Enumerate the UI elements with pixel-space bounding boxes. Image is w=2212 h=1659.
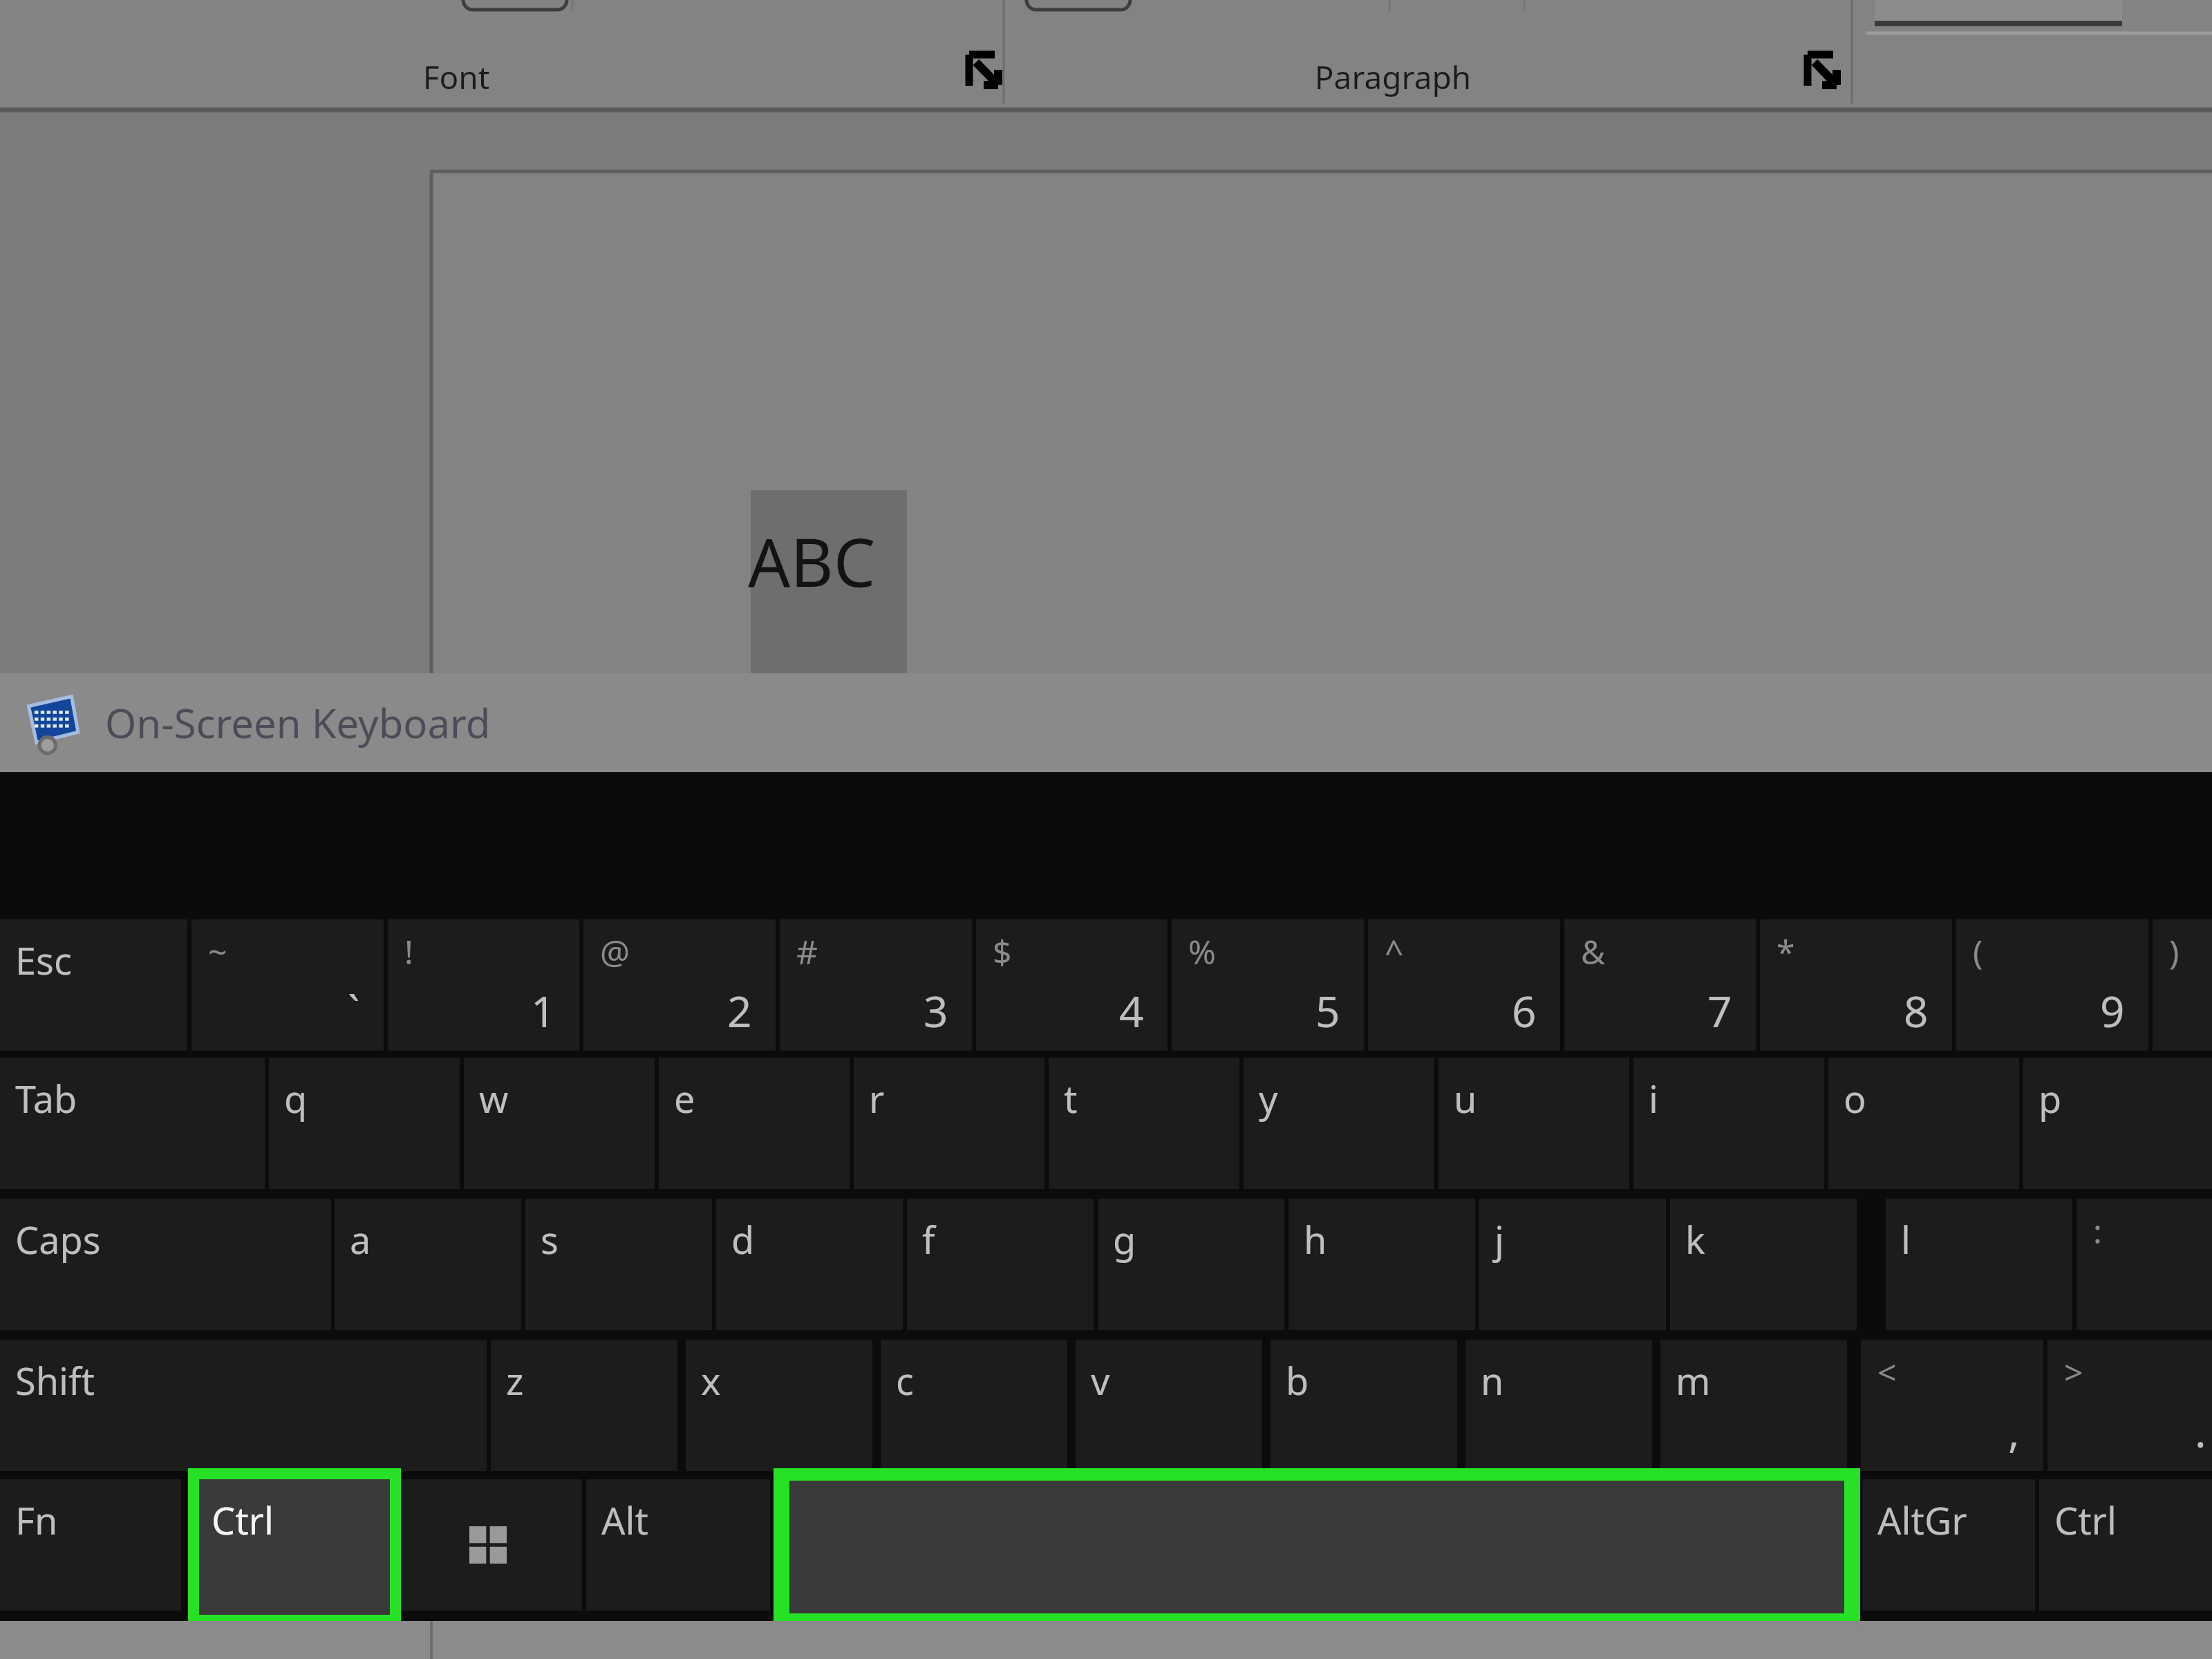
- staticText: Fn: [15, 1494, 58, 1546]
- staticText: a: [350, 1214, 371, 1265]
- button[interactable]: 7 key: [1564, 919, 1756, 1051]
- button[interactable]: b: [1271, 1340, 1457, 1471]
- button[interactable]: Shift: [0, 1340, 487, 1471]
- staticText: Shift: [15, 1355, 95, 1406]
- button[interactable]: e: [659, 1058, 850, 1189]
- button[interactable]: j: [1479, 1199, 1666, 1330]
- button[interactable]: w: [464, 1058, 655, 1189]
- staticText: Ctrl: [214, 1494, 276, 1546]
- button[interactable]: p: [2023, 1058, 2212, 1189]
- button[interactable]: y: [1244, 1058, 1434, 1189]
- button[interactable]: t: [1049, 1058, 1239, 1189]
- staticText: y: [1259, 1073, 1278, 1124]
- staticText: n: [1481, 1355, 1504, 1406]
- staticText: Tab: [15, 1073, 77, 1124]
- staticText: k: [1685, 1214, 1705, 1265]
- button[interactable]: 8 key: [1760, 919, 1952, 1051]
- button[interactable]: d: [716, 1199, 903, 1330]
- button[interactable]: 2 key: [583, 919, 776, 1051]
- staticText: q: [284, 1073, 308, 1124]
- staticText: h: [1304, 1214, 1327, 1265]
- button[interactable]: 0 key: [2153, 919, 2212, 1051]
- button[interactable]: On-Screen Keyboard icon: [0, 673, 2212, 772]
- button[interactable]: Paragraph settings: [1806, 53, 1840, 87]
- staticText: Alt: [601, 1494, 648, 1546]
- button[interactable]: Tab: [0, 1058, 265, 1189]
- staticText: :: [2093, 1208, 2102, 1253]
- staticText: m: [1676, 1355, 1711, 1406]
- button[interactable]: 1 key: [388, 919, 579, 1051]
- button[interactable]: 3 key: [780, 919, 972, 1051]
- staticText: Caps: [15, 1214, 101, 1265]
- button[interactable]: r: [854, 1058, 1044, 1189]
- button[interactable]: m: [1660, 1340, 1847, 1471]
- staticText: d: [731, 1214, 755, 1265]
- button[interactable]: u: [1438, 1058, 1629, 1189]
- staticText: Ctrl: [2054, 1494, 2117, 1546]
- button[interactable]: i: [1633, 1058, 1824, 1189]
- button[interactable]: g: [1098, 1199, 1284, 1330]
- button[interactable]: a: [335, 1199, 521, 1330]
- button[interactable]: ` key: [191, 919, 384, 1051]
- button[interactable]: ; key: [2077, 1199, 2212, 1330]
- button[interactable]: c: [881, 1340, 1067, 1471]
- staticText: u: [1454, 1073, 1477, 1124]
- button[interactable]: 6 key: [1368, 919, 1560, 1051]
- staticText: AltGr: [1877, 1494, 1967, 1546]
- button[interactable]: , key: [1861, 1340, 2043, 1471]
- staticText: >: [2064, 1349, 2083, 1394]
- staticText: t: [1064, 1073, 1078, 1124]
- button[interactable]: Alt: [586, 1479, 770, 1611]
- button[interactable]: l: [1886, 1199, 2072, 1330]
- staticText: j: [1494, 1214, 1504, 1265]
- button[interactable]: Ctrl: [199, 1479, 390, 1611]
- staticText: e: [674, 1073, 695, 1124]
- button[interactable]: z: [491, 1340, 677, 1471]
- button[interactable]: Ctrl key highlighted: [188, 1468, 401, 1626]
- button[interactable]: f: [907, 1199, 1094, 1330]
- button[interactable]: s: [525, 1199, 712, 1330]
- button[interactable]: Spacebar highlighted: [774, 1468, 1860, 1626]
- staticText: Ctrl: [212, 1494, 274, 1546]
- staticText: `: [348, 982, 360, 1040]
- button[interactable]: 5 key: [1172, 919, 1364, 1051]
- staticText: ,: [2008, 1402, 2020, 1460]
- staticText: 7: [1707, 982, 1732, 1040]
- button[interactable]: h: [1288, 1199, 1475, 1330]
- staticText: .: [2195, 1402, 2206, 1460]
- staticText: g: [1113, 1214, 1136, 1265]
- button[interactable]: n: [1465, 1340, 1652, 1471]
- button[interactable]: Spacebar: [789, 1479, 1844, 1611]
- staticText: 1: [531, 982, 556, 1040]
- staticText: 6: [1512, 982, 1537, 1040]
- button[interactable]: Fn: [0, 1479, 181, 1611]
- staticText: *: [1777, 929, 1795, 974]
- button[interactable]: Esc: [0, 919, 187, 1051]
- button[interactable]: x: [686, 1340, 872, 1471]
- button[interactable]: o: [1828, 1058, 2019, 1189]
- staticText: w: [479, 1073, 509, 1124]
- staticText: x: [701, 1355, 721, 1406]
- staticText: s: [541, 1214, 559, 1265]
- staticText: #: [796, 929, 818, 974]
- button[interactable]: q: [269, 1058, 460, 1189]
- button[interactable]: 4 key: [976, 919, 1168, 1051]
- other: On-Screen Keyboard icon: [24, 691, 88, 756]
- staticText: &: [1581, 929, 1606, 974]
- button[interactable]: v: [1076, 1340, 1262, 1471]
- button[interactable]: Font settings: [967, 53, 1002, 87]
- button[interactable]: Caps: [0, 1199, 331, 1330]
- button[interactable]: AltGr: [1862, 1479, 2035, 1611]
- button[interactable]: 9 key: [1956, 919, 2148, 1051]
- button[interactable]: Windows key: [394, 1479, 582, 1611]
- staticText: b: [1286, 1355, 1309, 1406]
- staticText: c: [896, 1355, 914, 1406]
- staticText: v: [1091, 1355, 1110, 1406]
- staticText: i: [1649, 1073, 1658, 1124]
- staticText: !: [404, 929, 413, 974]
- staticText: ~: [208, 929, 227, 974]
- staticText: 5: [1315, 982, 1340, 1040]
- button[interactable]: Ctrl: [2039, 1479, 2212, 1611]
- button[interactable]: k: [1670, 1199, 1857, 1330]
- button[interactable]: . key: [2047, 1340, 2212, 1471]
